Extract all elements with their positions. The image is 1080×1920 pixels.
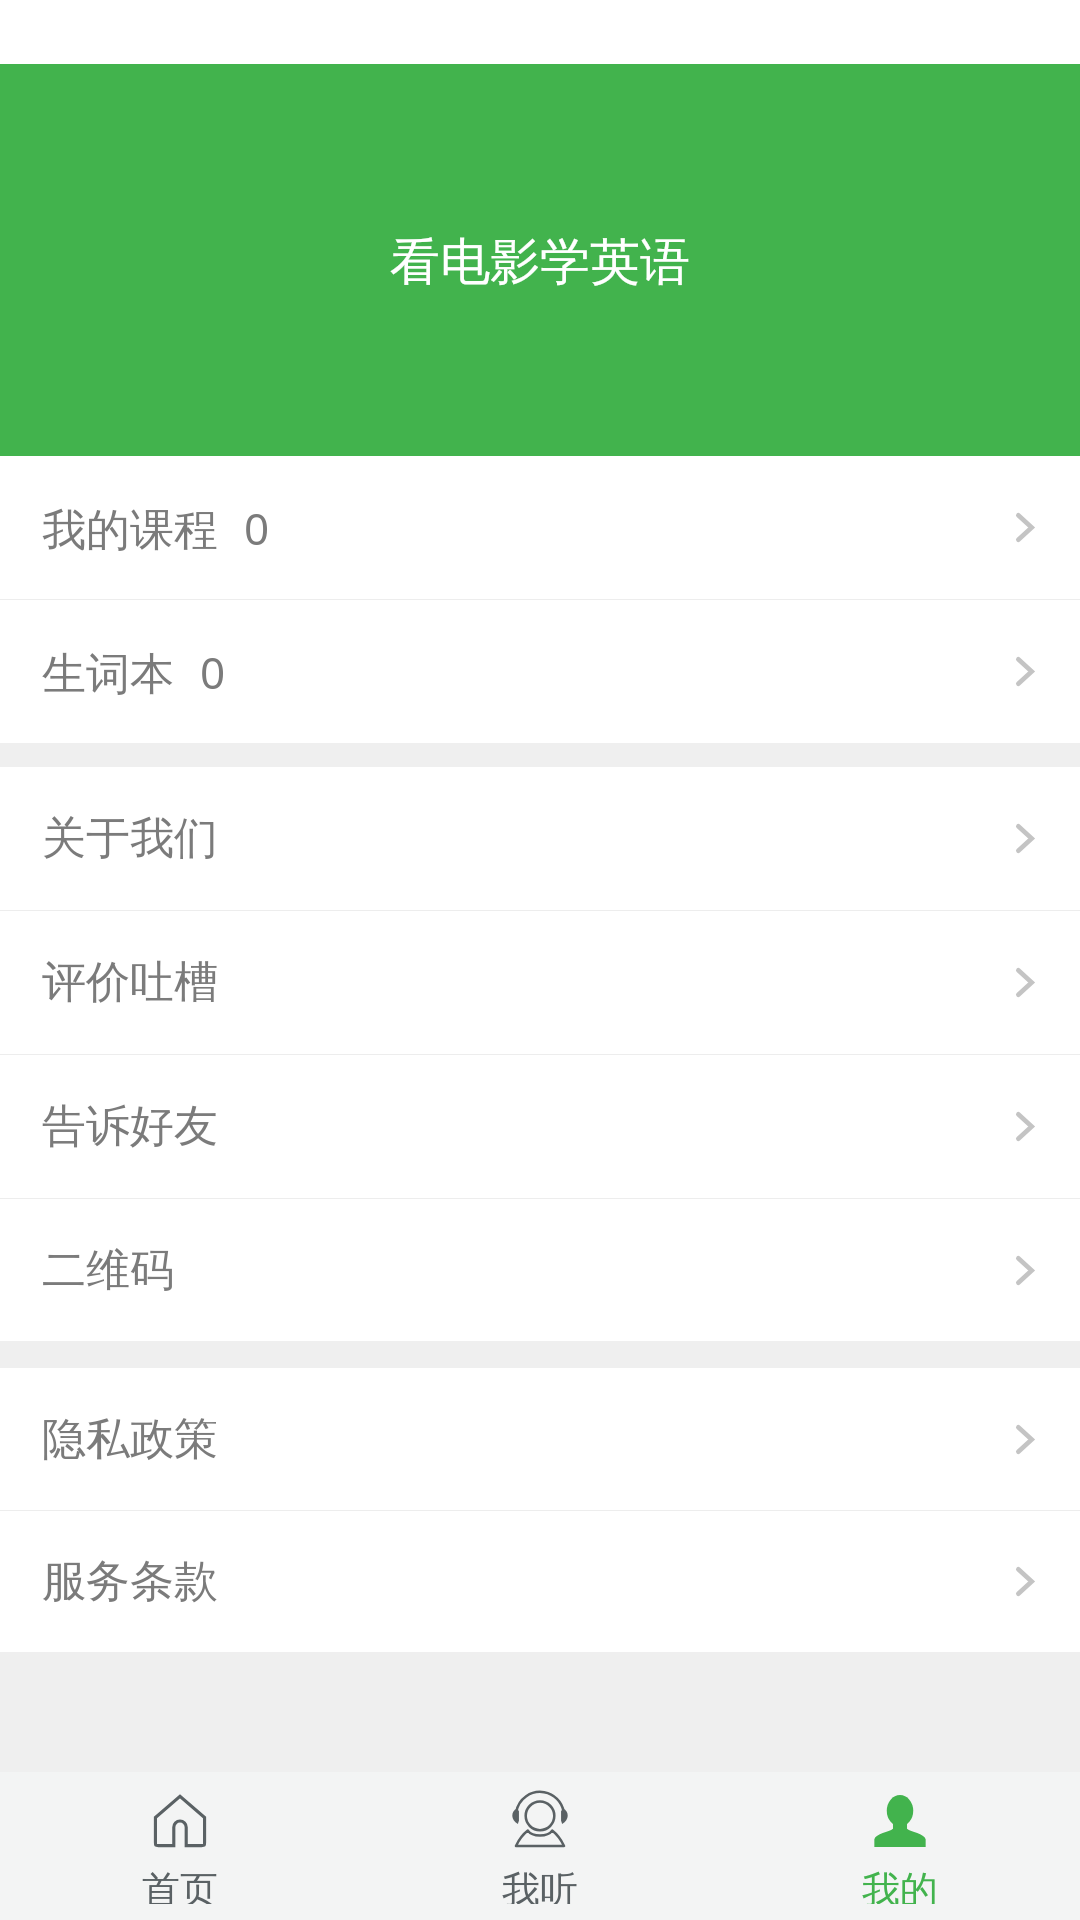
staticText: 首页 xyxy=(142,1866,218,1904)
staticText: 看电影学英语 xyxy=(390,231,690,294)
button[interactable]: 评价吐槽 xyxy=(0,911,1080,1054)
staticText: 我听 xyxy=(502,1866,578,1904)
staticText: 评价吐槽 xyxy=(42,955,218,1010)
button[interactable]: 服务条款 xyxy=(0,1511,1080,1652)
button[interactable]: Home xyxy=(0,1772,360,1920)
button[interactable]: 我的课程 0 xyxy=(0,456,1080,599)
button[interactable]: 生词本 0 xyxy=(0,600,1080,743)
staticText: 生词本 0 xyxy=(42,642,226,702)
button[interactable]: 二维码 xyxy=(0,1199,1080,1341)
staticText: 关于我们 xyxy=(42,811,218,866)
button[interactable]: Listen xyxy=(360,1772,720,1920)
button[interactable]: 隐私政策 xyxy=(0,1368,1080,1510)
staticText: 二维码 xyxy=(42,1243,174,1298)
staticText: 服务条款 xyxy=(42,1554,218,1609)
staticText: 我的课程 0 xyxy=(42,498,270,558)
button[interactable]: 告诉好友 xyxy=(0,1055,1080,1198)
staticText: 我的 xyxy=(862,1866,938,1904)
staticText: 告诉好友 xyxy=(42,1099,218,1154)
staticText: 隐私政策 xyxy=(42,1412,218,1467)
button[interactable]: 关于我们 xyxy=(0,767,1080,910)
button[interactable]: Profile xyxy=(720,1772,1080,1920)
